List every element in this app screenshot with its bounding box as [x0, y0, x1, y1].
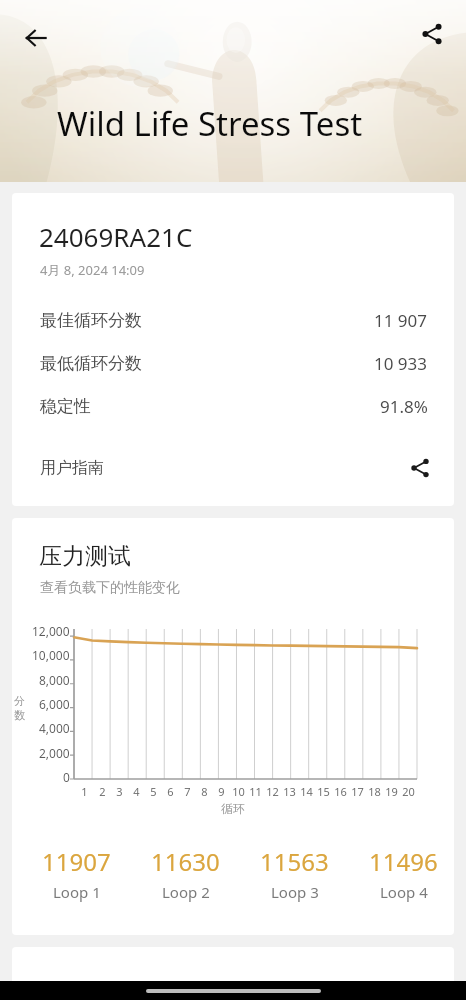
staticText: 8,000 — [39, 672, 70, 688]
staticText: 2,000 — [39, 745, 70, 761]
staticText: 最低循环分数 — [40, 353, 142, 374]
staticText: 11630 — [151, 845, 220, 878]
staticText: 14 — [300, 784, 313, 799]
button[interactable]: 11907 — [30, 835, 123, 911]
staticText: 11496 — [369, 845, 438, 878]
staticText: 稳定性 — [40, 396, 91, 417]
staticText: 3 — [116, 784, 123, 799]
staticText: 用户指南 — [40, 458, 104, 478]
staticText: 17 — [351, 784, 364, 799]
staticText: 11 — [249, 784, 262, 799]
staticText: 15 — [317, 784, 330, 799]
staticText: 循环 — [221, 801, 245, 816]
staticText: 数 — [14, 708, 25, 722]
staticText: 16 — [334, 784, 347, 799]
button[interactable]: 11496 — [357, 835, 450, 911]
staticText: 4月 8, 2024 14:09 — [40, 261, 145, 279]
staticText: 13 — [283, 784, 296, 799]
staticText: 6,000 — [39, 696, 70, 712]
staticText: 91.8% — [380, 395, 428, 418]
staticText: 4,000 — [39, 720, 70, 736]
staticText: Wild Life Stress Test — [57, 101, 363, 146]
staticText: 11907 — [42, 845, 111, 878]
staticText: Loop 2 — [162, 882, 210, 902]
staticText: 10 — [232, 784, 245, 799]
staticText: 10 933 — [374, 352, 428, 375]
staticText: 12 — [266, 784, 279, 799]
staticText: Loop 1 — [53, 882, 101, 902]
staticText: 6 — [167, 784, 174, 799]
staticText: 4 — [133, 784, 140, 799]
button[interactable]: 11563 — [248, 835, 341, 911]
staticText: 2 — [99, 784, 106, 799]
button[interactable]: Share — [408, 10, 456, 58]
staticText: 5 — [150, 784, 157, 799]
staticText: 查看负载下的性能变化 — [40, 579, 180, 597]
staticText: 10,000 — [32, 647, 70, 663]
staticText: 7 — [184, 784, 191, 799]
staticText: 24069RA21C — [39, 219, 193, 254]
staticText: 20 — [402, 784, 415, 799]
staticText: 最佳循环分数 — [40, 310, 142, 331]
staticText: 18 — [368, 784, 381, 799]
button[interactable]: 最低循环分数 — [12, 342, 454, 385]
staticText: 0 — [63, 769, 70, 785]
button[interactable]: 11630 — [139, 835, 232, 911]
staticText: 分 — [14, 694, 25, 708]
button[interactable]: 稳定性 — [12, 385, 454, 428]
staticText: 11 907 — [374, 309, 428, 332]
button[interactable]: 用户指南 — [12, 440, 454, 496]
staticText: Loop 4 — [380, 882, 428, 902]
button[interactable]: 最佳循环分数 — [12, 299, 454, 342]
button[interactable] — [12, 947, 454, 987]
staticText: 12,000 — [32, 623, 70, 639]
staticText: 9 — [218, 784, 225, 799]
staticText: Loop 3 — [271, 882, 319, 902]
staticText: 8 — [201, 784, 208, 799]
staticText: 19 — [385, 784, 398, 799]
staticText: 11563 — [260, 845, 329, 878]
staticText: 1 — [81, 784, 88, 799]
button[interactable]: Back — [12, 14, 60, 62]
staticText: 压力测试 — [39, 542, 131, 571]
